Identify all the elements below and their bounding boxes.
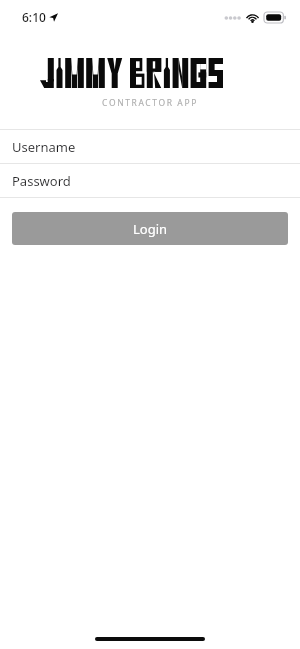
- staticText: CONTRACTOR APP: [0, 97, 300, 109]
- staticText: Login: [133, 220, 168, 238]
- staticText: Username: [12, 138, 76, 156]
- staticText: 6:10: [22, 9, 46, 25]
- other: Jimmy Brings: [40, 58, 261, 88]
- button[interactable]: Login: [12, 212, 288, 245]
- button[interactable]: Password: [0, 164, 300, 197]
- button[interactable]: Username: [0, 130, 300, 163]
- staticText: Password: [12, 172, 71, 190]
